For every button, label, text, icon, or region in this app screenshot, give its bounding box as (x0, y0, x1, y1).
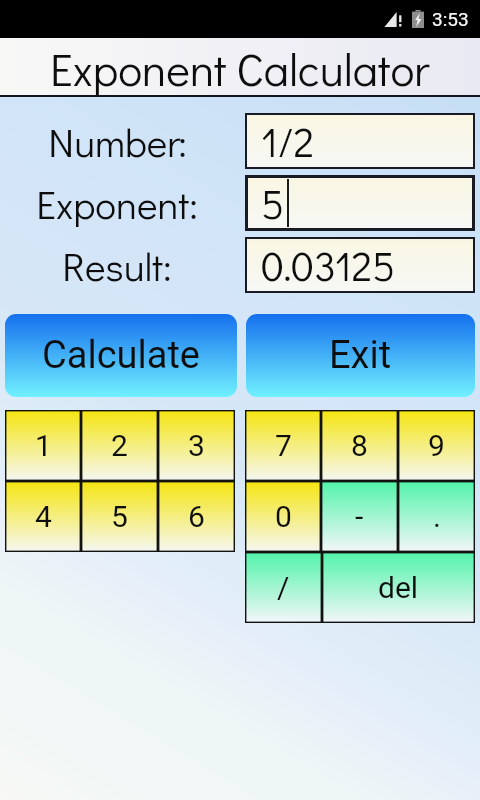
button[interactable]: Exit (246, 314, 475, 397)
button[interactable]: 8 (321, 410, 398, 481)
button[interactable]: 2 (81, 410, 158, 481)
button[interactable]: del (322, 552, 475, 623)
staticText: - (355, 499, 364, 534)
staticText: 2 (111, 428, 128, 463)
button[interactable]: 7 (245, 410, 321, 481)
staticText: 1/2 (261, 114, 314, 168)
button[interactable]: 1/2 (245, 113, 475, 169)
button[interactable]: 9 (398, 410, 475, 481)
button[interactable]: - (321, 481, 398, 552)
staticText: Result: (62, 240, 172, 291)
button[interactable]: 1 (5, 410, 81, 481)
staticText: 0.03125 (261, 238, 396, 292)
button[interactable]: . (398, 481, 475, 552)
staticText: . (433, 499, 441, 534)
staticText: 8 (351, 428, 368, 463)
staticText: Number: (48, 116, 187, 167)
button[interactable]: 5 (81, 481, 158, 552)
button[interactable]: 0.03125 (245, 237, 475, 293)
staticText: 3 (188, 428, 205, 463)
button[interactable]: / (245, 552, 322, 623)
button[interactable]: 6 (158, 481, 235, 552)
button[interactable]: 5 (245, 175, 475, 231)
staticText: Calculate (42, 333, 200, 378)
button[interactable]: 3 (158, 410, 235, 481)
staticText: Exponent: (36, 178, 198, 229)
staticText: Exponent Calculator (50, 39, 430, 98)
button[interactable]: 4 (5, 481, 81, 552)
staticText: 3:53 (432, 8, 469, 30)
staticText: 7 (275, 428, 292, 463)
button[interactable]: 0 (245, 481, 321, 552)
staticText: 5 (261, 176, 285, 230)
staticText: Exit (329, 333, 392, 378)
staticText: 5 (111, 499, 128, 534)
staticText: 0 (275, 499, 292, 534)
staticText: del (378, 570, 419, 605)
button[interactable]: Calculate (5, 314, 237, 397)
staticText: 1 (35, 428, 52, 463)
staticText: 6 (188, 499, 205, 534)
staticText: / (277, 570, 290, 605)
staticText: 9 (428, 428, 445, 463)
staticText: 4 (35, 499, 52, 534)
